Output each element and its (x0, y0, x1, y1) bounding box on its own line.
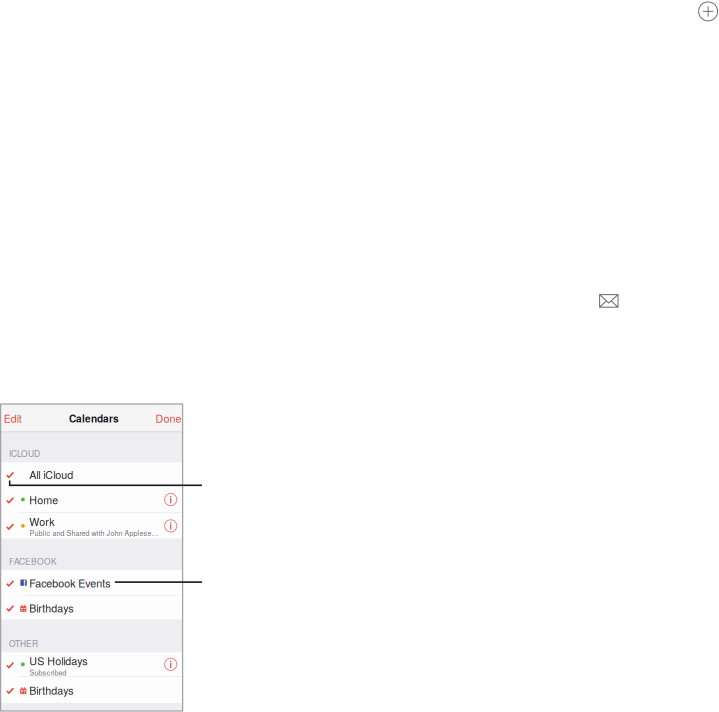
button[interactable]: Birthdays (1, 596, 183, 619)
staticText: f (23, 578, 25, 588)
staticText: Facebook Events (29, 575, 110, 591)
button[interactable]: Calendars (1, 404, 61, 424)
staticText: Home (29, 492, 58, 507)
button[interactable]: Work (1, 513, 183, 539)
staticText: US Holidays (29, 653, 87, 668)
staticText: Birthdays (29, 600, 73, 615)
button[interactable]: Edit (1, 404, 27, 424)
staticText: Done (155, 411, 181, 426)
button[interactable]: Birthdays (1, 677, 183, 703)
staticText: All iCloud (29, 467, 73, 482)
staticText: OTHER (9, 637, 38, 649)
staticText: Edit (4, 411, 22, 426)
button[interactable]: Done (1, 404, 29, 424)
staticText: ICLOUD (9, 447, 40, 459)
staticText: Subscribed (29, 667, 66, 677)
button[interactable]: All iCloud (1, 463, 183, 486)
staticText: FACEBOOK (9, 555, 57, 567)
button[interactable]: Mail (599, 294, 619, 308)
staticText: Public and Shared with John Applese… (29, 528, 158, 538)
staticText: Birthdays (29, 682, 73, 698)
button[interactable]: f (1, 570, 183, 596)
staticText: Work (29, 514, 54, 529)
button[interactable]: Add (698, 1, 719, 22)
button[interactable]: US Holidays (1, 652, 183, 677)
button[interactable]: Home (1, 486, 183, 513)
staticText: Calendars (69, 411, 119, 425)
